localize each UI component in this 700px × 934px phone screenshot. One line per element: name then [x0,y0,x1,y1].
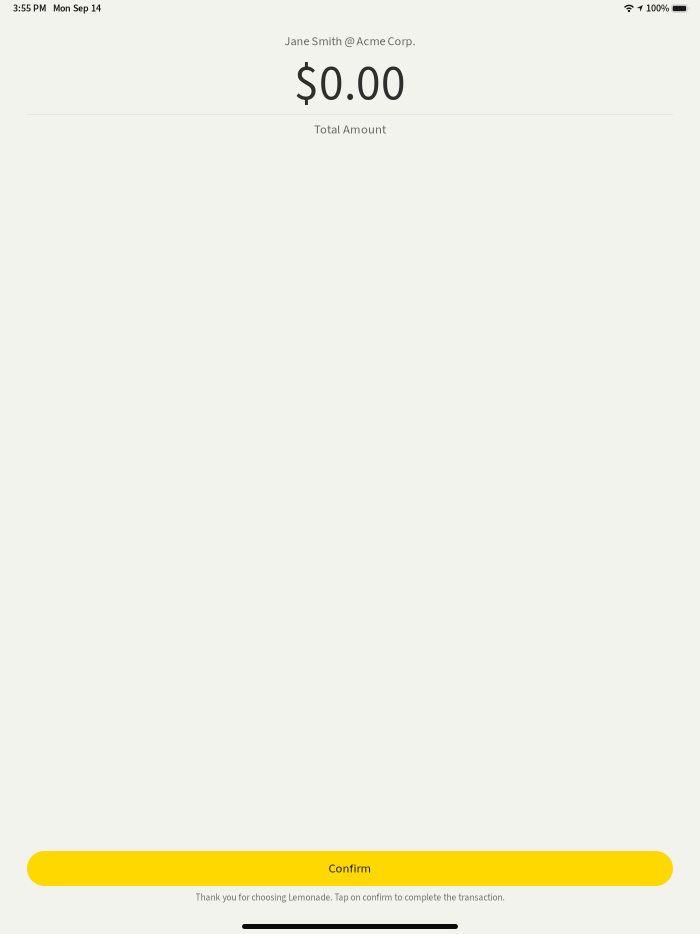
staticText: Confirm [328,859,371,877]
staticText: 100% [646,1,669,16]
staticText: Total Amount [314,120,386,138]
staticText: 3:55 PM [13,1,46,16]
staticText: Mon Sep 14 [53,1,101,16]
button[interactable]: Confirm [27,851,673,886]
staticText: Jane Smith @ Acme Corp. [284,33,415,50]
staticText: Thank you for choosing Lemonade. Tap on … [195,891,504,904]
staticText: $0.00 [294,49,406,119]
